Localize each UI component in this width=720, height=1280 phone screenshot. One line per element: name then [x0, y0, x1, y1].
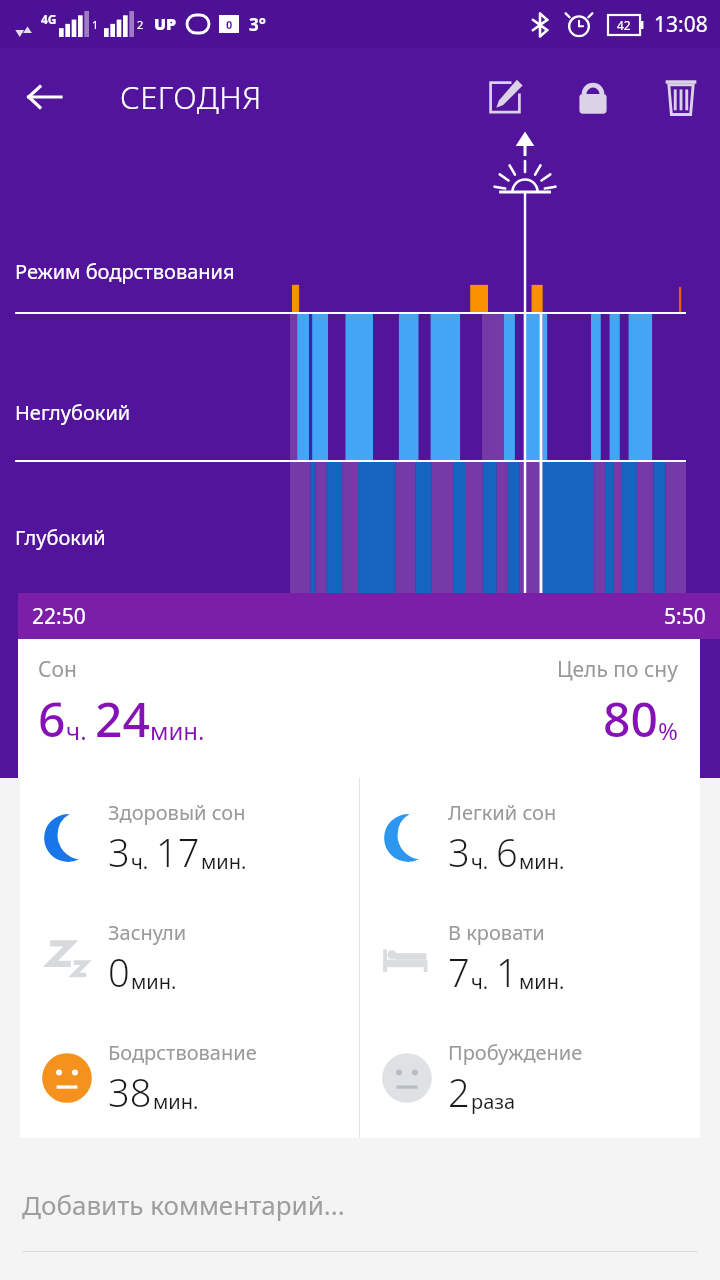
staticText: 1: [496, 946, 518, 998]
staticText: ч.: [471, 968, 489, 995]
staticText: Цель по сну: [557, 655, 678, 684]
staticText: ч.: [131, 848, 149, 875]
button[interactable]: Сон: [18, 639, 700, 778]
staticText: 5:50: [664, 602, 706, 631]
staticText: 2: [448, 1066, 470, 1118]
button[interactable]: Бодрствование: [20, 1018, 359, 1138]
staticText: мин.: [131, 968, 177, 995]
staticText: Режим бодрствования: [15, 258, 235, 285]
staticText: 80: [603, 686, 658, 751]
staticText: мин.: [150, 714, 205, 747]
button[interactable]: Легкий сон: [360, 778, 700, 898]
staticText: 42: [617, 17, 631, 33]
staticText: мин.: [519, 968, 565, 995]
staticText: ч.: [66, 714, 87, 747]
staticText: Заснули: [108, 919, 187, 946]
other: Battery: [608, 15, 644, 35]
button[interactable]: Пробуждение: [360, 1018, 700, 1138]
button[interactable]: Edit: [480, 72, 530, 122]
other: Bluetooth: [530, 12, 550, 38]
staticText: 24: [95, 686, 150, 751]
staticText: Здоровый сон: [108, 799, 246, 826]
staticText: мин.: [201, 848, 247, 875]
staticText: Легкий сон: [448, 799, 557, 826]
staticText: ч.: [471, 848, 489, 875]
staticText: СЕГОДНЯ: [120, 76, 262, 118]
staticText: 13:08: [654, 10, 708, 39]
staticText: 6: [38, 686, 66, 751]
staticText: 4G: [41, 11, 57, 27]
staticText: Бодрствование: [108, 1039, 257, 1066]
staticText: 3: [448, 826, 470, 878]
staticText: Глубокий: [15, 524, 106, 551]
button[interactable]: Back: [14, 67, 74, 127]
staticText: Пробуждение: [448, 1039, 583, 1066]
staticText: 38: [108, 1066, 152, 1118]
staticText: 2: [137, 17, 144, 32]
staticText: мин.: [519, 848, 565, 875]
staticText: 3°: [249, 13, 266, 36]
staticText: раза: [471, 1088, 516, 1115]
staticText: Сон: [38, 655, 77, 684]
button[interactable]: Delete: [656, 72, 706, 122]
staticText: 17: [156, 826, 200, 878]
staticText: 6: [496, 826, 518, 878]
button[interactable]: Здоровый сон: [20, 778, 359, 898]
staticText: Неглубокий: [15, 399, 131, 426]
staticText: 22:50: [32, 602, 86, 631]
button[interactable]: Заснули: [20, 898, 359, 1018]
staticText: Добавить комментарий...: [22, 1187, 345, 1222]
other: Alarm: [566, 12, 592, 38]
staticText: %: [658, 714, 678, 747]
staticText: 0: [226, 17, 233, 32]
button[interactable]: В кровати: [360, 898, 700, 1018]
staticText: В кровати: [448, 919, 545, 946]
staticText: 3: [108, 826, 130, 878]
staticText: 1: [92, 17, 99, 32]
button[interactable]: Добавить комментарий...: [0, 1150, 720, 1258]
button[interactable]: Lock: [568, 72, 618, 122]
staticText: мин.: [153, 1088, 199, 1115]
staticText: 7: [448, 946, 470, 998]
staticText: UP: [154, 13, 177, 35]
staticText: 0: [108, 946, 130, 998]
